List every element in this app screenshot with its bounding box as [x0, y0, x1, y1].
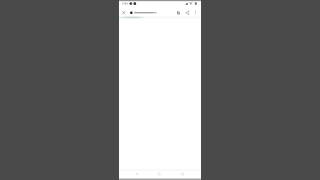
button[interactable]: Back [129, 170, 145, 179]
button[interactable]: Address bar, goodandbadnews.co.nz [128, 9, 158, 17]
button[interactable]: Recent apps [175, 170, 191, 179]
button[interactable]: More options [192, 8, 201, 17]
button[interactable]: Home [152, 170, 167, 179]
button[interactable]: Download page [174, 8, 183, 17]
button[interactable]: Browser page [119, 0, 201, 180]
button[interactable]: Close [120, 8, 128, 17]
button[interactable]: Share [183, 8, 192, 17]
